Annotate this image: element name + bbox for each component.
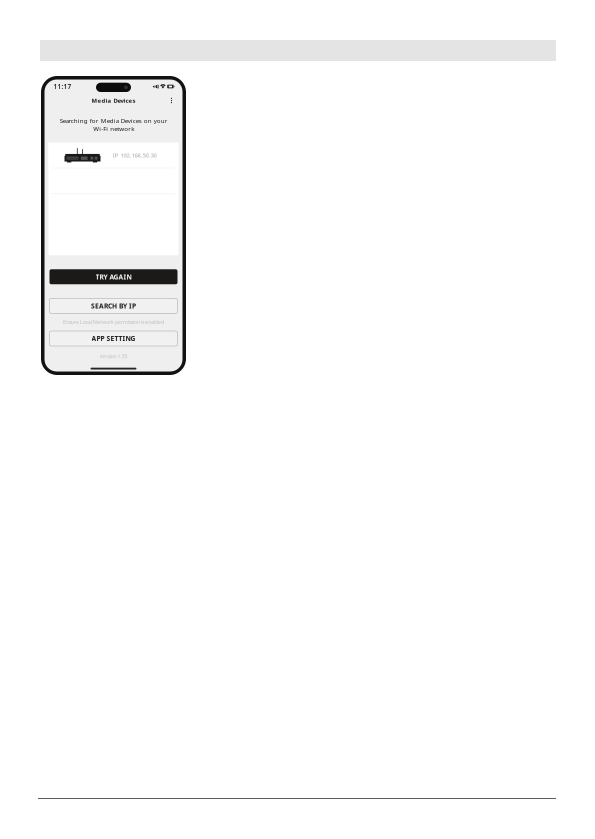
button[interactable]: More options <box>164 94 178 107</box>
staticText: TRY AGAIN <box>95 272 131 281</box>
staticText: IP 192.168.50.30 <box>112 151 156 159</box>
button[interactable]: IP 192.168.50.30 <box>48 143 178 168</box>
staticText: APP SETTING <box>91 334 135 343</box>
staticText: SEARCH BY IP <box>91 301 136 310</box>
staticText: Ensure Local Network permission is enabl… <box>63 319 164 325</box>
staticText: Searching for Media Devices on your Wi‑F… <box>59 116 167 133</box>
button[interactable]: APP SETTING <box>49 331 177 346</box>
button[interactable]: SEARCH BY IP <box>49 298 177 313</box>
staticText: Version 1.35 <box>99 353 127 360</box>
button[interactable]: TRY AGAIN <box>49 269 177 284</box>
staticText: Media Devices <box>91 97 135 104</box>
staticText: 11:17 <box>53 82 71 91</box>
